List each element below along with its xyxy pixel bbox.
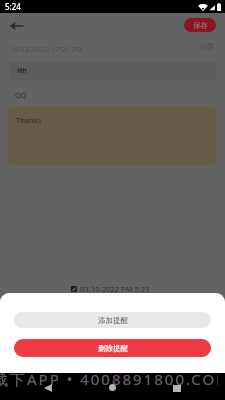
button[interactable]: 保存 [184,18,216,32]
staticText: 5:24 [5,1,21,12]
button[interactable]: 03-10-2022 PM 5:23 [69,282,152,296]
staticText: 10.03.2022, 17:21 PM [10,44,83,54]
staticText: 删除提醒 [98,344,128,353]
staticText: 03-10-2022 PM 5:23 [80,284,150,294]
staticText: Thanks [16,115,42,125]
staticText: 添加提醒 [98,316,128,325]
button[interactable]: 删除提醒 [14,339,211,357]
staticText: 保存 [193,21,208,30]
staticText: QQ [15,90,27,100]
staticText: 载下APP • 4008891800.COM [0,369,218,387]
button[interactable]: 分类 [197,41,216,52]
button[interactable]: Hh [9,62,216,80]
button[interactable]: 添加提醒 [14,312,211,328]
button[interactable]: Back [44,384,52,392]
button[interactable]: Back [5,17,28,35]
staticText: Hh [17,66,27,76]
button[interactable]: Home [109,384,116,391]
staticText: 分类 [199,42,214,51]
